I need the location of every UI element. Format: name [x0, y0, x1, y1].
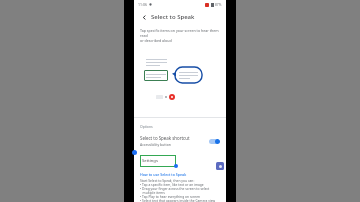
staticText: • Tap a specific item, like text or an i…: [140, 182, 204, 186]
button[interactable]: Toggle shortcut: [209, 139, 220, 144]
staticText: multiple items: [140, 190, 165, 194]
staticText: Accessibility button: [140, 142, 171, 147]
button[interactable]: Back: [139, 12, 149, 22]
staticText: Start Select to Speak, then you can:: [140, 178, 195, 182]
staticText: Settings: [142, 158, 158, 164]
staticText: Select to Speak shortcut: [140, 135, 190, 141]
button[interactable]: Accessibility button: [216, 162, 224, 170]
button[interactable]: Settings: [140, 155, 176, 167]
staticText: Select to Speak: [151, 13, 195, 21]
staticText: or described aloud: [140, 38, 172, 43]
staticText: • Select text that appears inside the Ca…: [140, 198, 216, 202]
staticText: Options: [140, 124, 153, 129]
staticText: • Drag your finger across the screen to …: [140, 186, 210, 190]
button[interactable]: Select to Speak shortcut: [134, 133, 226, 149]
staticText: Tap specific items on your screen to hea…: [140, 28, 220, 38]
staticText: 11:06: [138, 2, 147, 7]
staticText: 87%: [215, 3, 222, 7]
staticText: • Tap Play to hear everything on screen: [140, 194, 201, 198]
staticText: How to use Select to Speak: [140, 172, 187, 177]
